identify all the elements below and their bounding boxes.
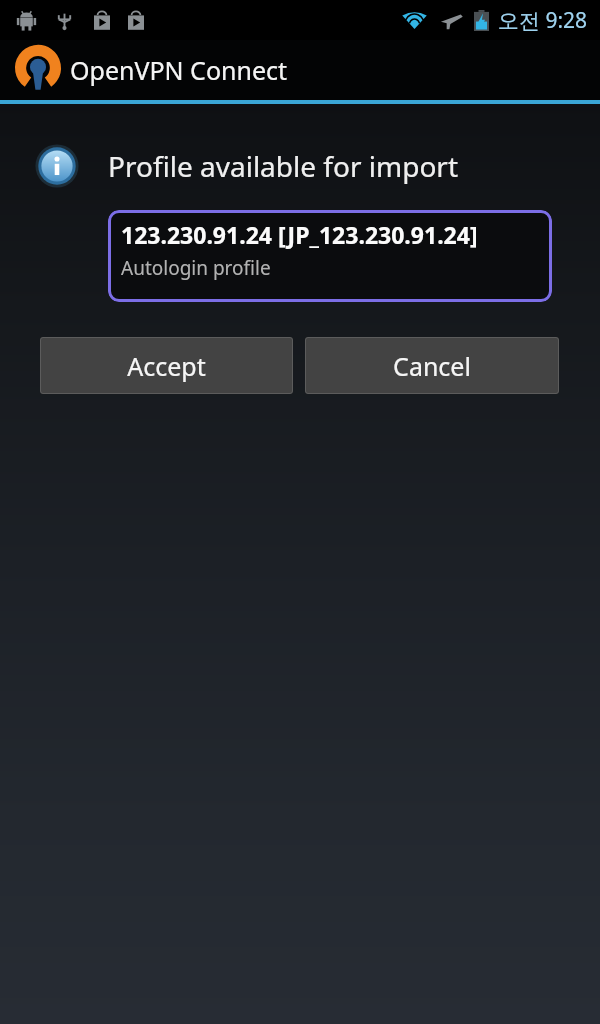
button[interactable]: 123.230.91.24 [JP_123.230.91.24] (108, 210, 552, 302)
staticText: OpenVPN Connect (70, 53, 288, 87)
other: OpenVPN logo (12, 44, 64, 96)
button[interactable]: Cancel (305, 337, 559, 394)
staticText: 123.230.91.24 [JP_123.230.91.24] (121, 219, 478, 250)
staticText: Accept (127, 349, 206, 383)
staticText: Profile available for import (108, 147, 459, 185)
button[interactable]: Accept (40, 337, 293, 394)
staticText: Autologin profile (121, 255, 271, 281)
staticText: Cancel (393, 349, 471, 383)
staticText: 오전 9:28 (498, 6, 588, 35)
